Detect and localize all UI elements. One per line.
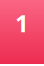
staticText: 1 xyxy=(15,7,29,39)
